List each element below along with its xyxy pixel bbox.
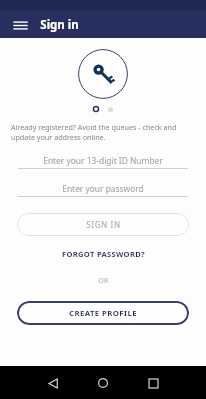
button[interactable]: Open navigation menu: [9, 14, 31, 36]
staticText: OR: [98, 276, 109, 286]
button[interactable]: Back: [38, 368, 68, 398]
button[interactable]: Enter your 13-digit ID Number: [18, 153, 188, 169]
button[interactable]: FORGOT PASSWORD?: [56, 247, 151, 261]
staticText: Sign in: [40, 17, 79, 33]
button[interactable]: Home: [88, 368, 118, 398]
button[interactable]: Recent apps: [138, 368, 168, 398]
staticText: CREATE PROFILE: [69, 308, 137, 319]
button[interactable]: SIGN IN: [17, 213, 189, 236]
button[interactable]: CREATE PROFILE: [17, 301, 189, 325]
staticText: Enter your password: [62, 183, 144, 194]
staticText: Already registered? Avoid the queues - c…: [11, 122, 195, 142]
staticText: Enter your 13-digit ID Number: [43, 155, 163, 166]
staticText: FORGOT PASSWORD?: [62, 249, 145, 259]
button[interactable]: Enter your password: [18, 181, 188, 197]
staticText: SIGN IN: [86, 219, 121, 230]
